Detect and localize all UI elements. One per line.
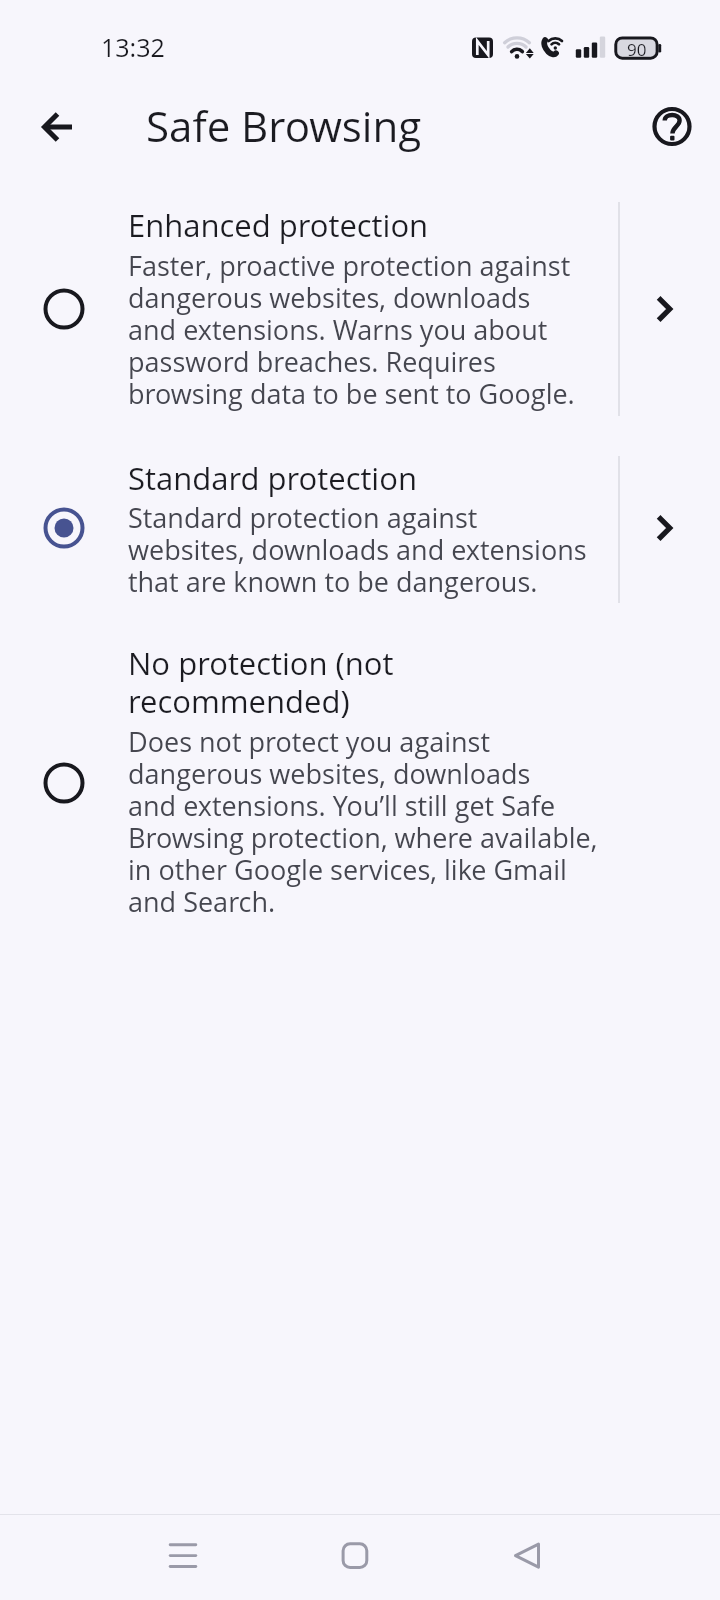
staticText: Enhanced protection	[128, 207, 600, 245]
button[interactable]: More about Standard protection	[633, 496, 697, 560]
staticText: Safe Browsing	[146, 97, 422, 154]
staticText: 13:32	[101, 30, 165, 64]
button[interactable]: More about Enhanced protection	[633, 277, 697, 341]
staticText: No protection (not recommended)	[128, 645, 600, 721]
button[interactable]: Standard protection	[0, 441, 618, 614]
staticText: 90	[627, 38, 647, 61]
button[interactable]: Recent apps	[139, 1512, 227, 1600]
staticText: Standard protection against websites, do…	[128, 503, 608, 599]
button[interactable]: Home	[311, 1512, 399, 1600]
button[interactable]: Back	[483, 1512, 571, 1600]
button[interactable]: No protection (not recommended)	[0, 631, 720, 932]
staticText: Faster, proactive protection against dan…	[128, 251, 608, 411]
button[interactable]: Back	[14, 83, 102, 171]
button[interactable]: Help	[628, 83, 716, 171]
staticText: Standard protection	[128, 460, 600, 498]
button[interactable]: Enhanced protection	[0, 196, 618, 424]
staticText: Does not protect you against dangerous w…	[128, 727, 608, 919]
